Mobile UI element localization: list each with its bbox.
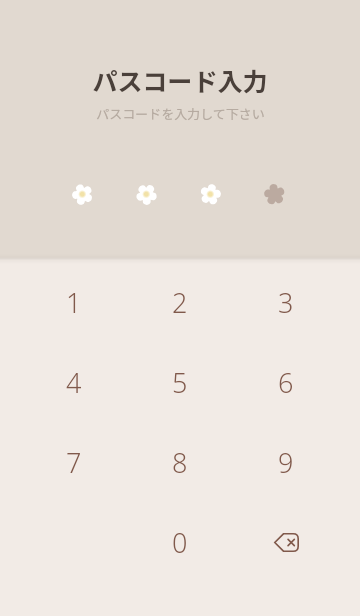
button[interactable]: 1 <box>21 262 127 342</box>
button[interactable]: 7 <box>21 422 127 502</box>
staticText: パスコード入力 <box>92 62 268 98</box>
button[interactable]: 5 <box>127 342 233 422</box>
staticText: 2 <box>172 284 188 321</box>
button[interactable]: 6 <box>233 342 339 422</box>
button[interactable]: 8 <box>127 422 233 502</box>
staticText: 5 <box>172 364 188 401</box>
staticText: 6 <box>278 364 294 401</box>
button[interactable]: 0 <box>127 502 233 582</box>
button[interactable]: 3 <box>233 262 339 342</box>
staticText: 9 <box>278 444 294 481</box>
button[interactable]: 4 <box>21 342 127 422</box>
button[interactable]: 2 <box>127 262 233 342</box>
staticText: 3 <box>278 284 294 321</box>
staticText: 1 <box>66 284 82 321</box>
button[interactable]: Delete <box>233 502 339 582</box>
staticText: 7 <box>66 444 82 481</box>
button[interactable]: 9 <box>233 422 339 502</box>
staticText: 0 <box>172 524 188 561</box>
staticText: パスコードを入力して下さい <box>96 104 265 123</box>
staticText: 8 <box>172 444 188 481</box>
staticText: 4 <box>66 364 82 401</box>
